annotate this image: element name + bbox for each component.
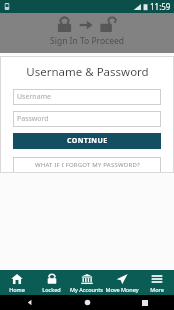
staticText: Username [17, 92, 52, 102]
button[interactable]: Username [13, 89, 161, 105]
button[interactable]: CONTINUE [13, 133, 161, 149]
staticText: CONTINUE [67, 136, 108, 146]
staticText: Username & Password [26, 64, 149, 80]
button[interactable]: Move Money [104, 270, 139, 295]
button[interactable]: Back [0, 295, 58, 310]
staticText: WHAT IF I FORGOT MY PASSWORD? [35, 161, 140, 169]
button[interactable]: Recent apps [116, 295, 174, 310]
staticText: Password [17, 114, 49, 124]
staticText: Locked [42, 286, 61, 293]
staticText: 11:59 [150, 1, 171, 12]
staticText: Sign In To Proceed [50, 35, 124, 47]
button[interactable]: WHAT IF I FORGOT MY PASSWORD? [13, 157, 161, 173]
button[interactable]: Home [58, 295, 116, 310]
button[interactable]: Password [13, 111, 161, 127]
button[interactable]: Locked [34, 270, 69, 295]
staticText: More [150, 286, 164, 293]
button[interactable]: My Accounts [69, 270, 104, 295]
button[interactable]: More [139, 270, 174, 295]
staticText: Home [9, 286, 25, 293]
staticText: My Accounts [70, 286, 103, 293]
button[interactable]: Home [0, 270, 34, 295]
staticText: Move Money [105, 286, 139, 293]
